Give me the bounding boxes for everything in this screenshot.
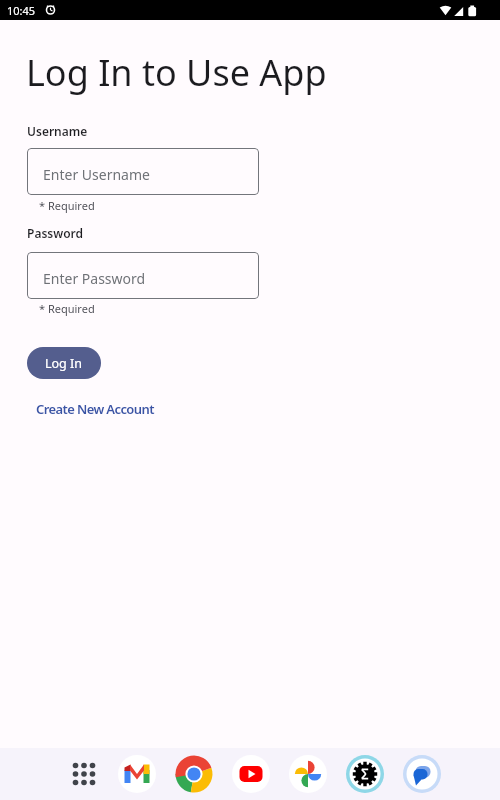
staticText: Log In: [45, 355, 83, 372]
staticText: Username: [27, 123, 88, 139]
button[interactable]: Enter Username: [27, 148, 259, 195]
button[interactable]: Log In: [27, 347, 101, 379]
button[interactable]: [346, 755, 384, 793]
staticText: Enter Username: [43, 165, 150, 184]
staticText: * Required: [39, 301, 95, 316]
button[interactable]: [65, 755, 103, 793]
staticText: Log In to Use App: [26, 48, 327, 97]
button[interactable]: [118, 755, 156, 793]
button[interactable]: [232, 755, 270, 793]
staticText: 10:45: [7, 3, 36, 18]
button[interactable]: [289, 755, 327, 793]
button[interactable]: [403, 755, 441, 793]
button[interactable]: [175, 755, 213, 793]
staticText: Create New Account: [36, 400, 154, 418]
staticText: * Required: [39, 198, 95, 213]
button[interactable]: Create New Account: [36, 400, 154, 418]
staticText: Password: [27, 225, 84, 241]
staticText: Enter Password: [43, 269, 146, 288]
button[interactable]: Enter Password: [27, 252, 259, 299]
